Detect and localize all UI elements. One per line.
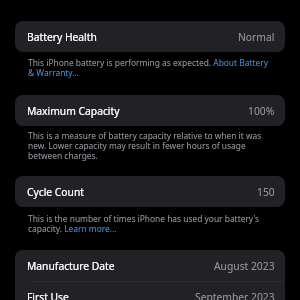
button[interactable]: Cycle Count [15,176,285,207]
button[interactable]: Manufacture Date [15,250,285,281]
button[interactable]: About Battery & Warranty [28,67,78,76]
button[interactable]: First Use [15,281,285,300]
staticText: First Use [27,290,69,300]
staticText: September 2023 [195,290,275,300]
button[interactable]: Maximum Capacity [15,95,285,126]
staticText: Manufacture Date [27,259,115,273]
staticText: Battery Health [27,30,97,44]
staticText: This iPhone battery is performing as exp… [28,57,274,78]
staticText: Maximum Capacity [27,104,120,118]
staticText: This is the number of times iPhone has u… [28,213,274,234]
button[interactable]: Learn more [65,223,117,232]
staticText: August 2023 [214,259,275,273]
button[interactable]: About Battery & Warranty [213,57,275,66]
staticText: 100% [248,104,275,118]
staticText: Cycle Count [27,185,85,199]
button[interactable]: Battery Health [15,21,285,52]
staticText: 150 [257,185,275,199]
staticText: Normal [238,30,275,44]
staticText: This is a measure of battery capacity re… [28,130,274,161]
